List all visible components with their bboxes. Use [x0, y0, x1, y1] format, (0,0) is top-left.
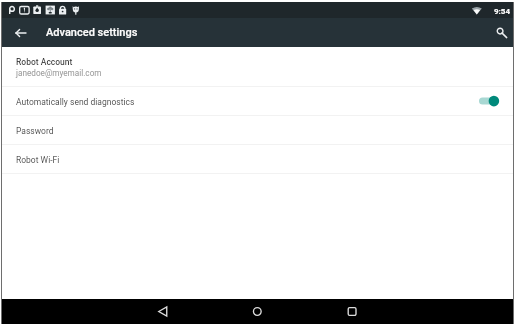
- button[interactable]: Home: [240, 299, 274, 324]
- button[interactable]: Back: [146, 299, 180, 324]
- staticText: 9:54: [494, 7, 511, 16]
- staticText: Password: [16, 126, 54, 136]
- button[interactable]: Navigate up: [2, 18, 40, 47]
- staticText: janedoe@myemail.com: [16, 68, 102, 78]
- button[interactable]: Automatically send diagnostics: [2, 87, 513, 115]
- staticText: Robot Wi-Fi: [16, 155, 60, 165]
- button[interactable]: Recent apps: [335, 299, 369, 324]
- staticText: Advanced settings: [46, 26, 138, 39]
- button[interactable]: Robot Account: [2, 47, 513, 86]
- staticText: Automatically send diagnostics: [16, 97, 135, 107]
- staticText: Robot Account: [16, 57, 73, 67]
- button[interactable]: Search: [487, 18, 512, 47]
- button[interactable]: Password: [2, 116, 513, 144]
- button[interactable]: Robot Wi-Fi: [2, 145, 513, 173]
